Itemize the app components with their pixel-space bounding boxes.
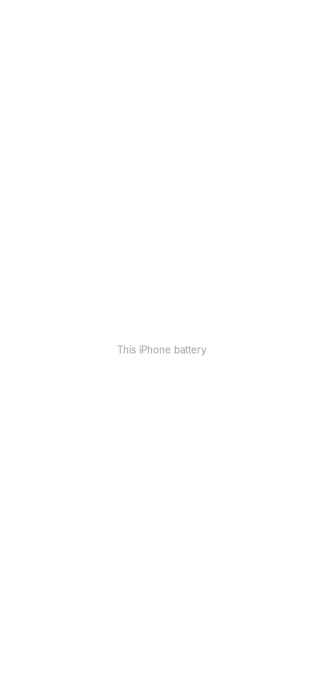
staticText: This iPhone battery bbox=[117, 344, 206, 356]
